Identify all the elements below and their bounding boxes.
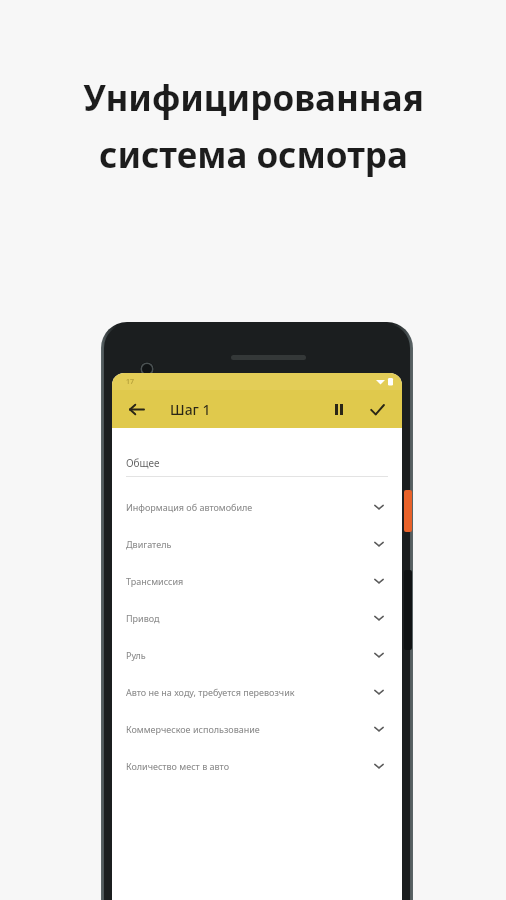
staticText: Шаг 1 xyxy=(170,400,211,419)
button[interactable]: Back xyxy=(124,397,148,421)
staticText: Руль xyxy=(126,649,146,661)
other: Power button xyxy=(404,490,412,532)
staticText: 17 xyxy=(126,377,135,387)
staticText: Коммерческое использование xyxy=(126,723,260,735)
button[interactable]: Коммерческое использование xyxy=(112,710,402,747)
staticText: Унифицированная xyxy=(83,74,424,122)
staticText: Количество мест в авто xyxy=(126,760,229,772)
button[interactable]: Общее xyxy=(112,450,402,476)
staticText: система осмотра xyxy=(99,131,408,179)
staticText: Авто не на ходу, требуется перевозчик xyxy=(126,686,295,698)
button[interactable]: Двигатель xyxy=(112,525,402,562)
button[interactable]: Количество мест в авто xyxy=(112,747,402,784)
staticText: Привод xyxy=(126,612,160,624)
staticText: Информация об автомобиле xyxy=(126,501,253,513)
button[interactable]: Done xyxy=(364,396,390,422)
button[interactable]: Привод xyxy=(112,599,402,636)
staticText: Двигатель xyxy=(126,538,172,550)
other: Volume button xyxy=(404,570,412,650)
button[interactable]: Руль xyxy=(112,636,402,673)
staticText: Трансмиссия xyxy=(126,575,184,587)
button[interactable]: Авто не на ходу, требуется перевозчик xyxy=(112,673,402,710)
button[interactable]: Информация об автомобиле xyxy=(112,488,402,525)
button[interactable]: Трансмиссия xyxy=(112,562,402,599)
button[interactable]: Pause xyxy=(326,396,352,422)
staticText: Общее xyxy=(126,456,160,470)
